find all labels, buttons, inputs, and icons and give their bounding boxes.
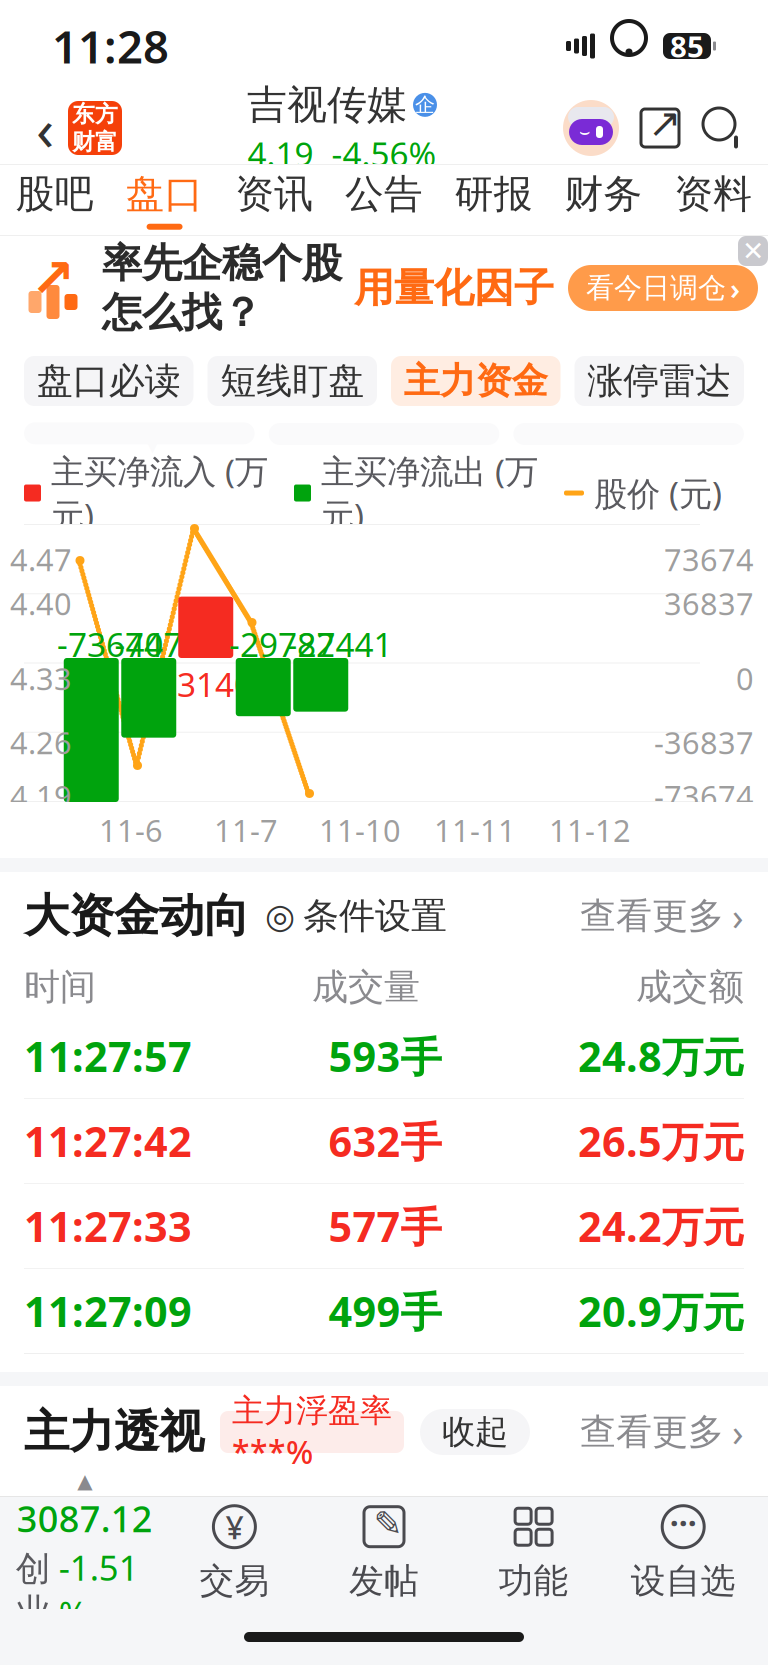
staticText: 资讯 [235,170,313,218]
button[interactable]: 11:27:33 [0,1184,768,1269]
staticText: ▲ [77,1470,92,1492]
staticText: 主买净流出 (万元) [321,449,538,537]
button[interactable]: 盘口必读 [24,356,193,406]
button[interactable]: 财务 [549,165,658,235]
staticText: 创业 [16,1548,51,1633]
staticText: › [732,891,744,941]
staticText: 发帖 [349,1560,419,1602]
button[interactable]: ◎ [249,894,447,938]
staticText: 交易 [199,1560,269,1602]
button[interactable]: 主力资金 [391,356,560,406]
staticText: 看今日调仓 [586,271,726,305]
staticText: ↗ [30,248,75,308]
staticText: 632手 [328,1114,441,1168]
staticText: -1.51% [59,1544,139,1636]
staticText: ··· [670,1501,697,1544]
staticText: 盘口 [126,170,204,218]
staticText: 24.2万元 [578,1199,744,1253]
staticText: -36837 [654,722,754,763]
staticText: 73674 [664,539,754,580]
staticText: › [730,268,740,307]
button[interactable]: 查看更多 [580,891,744,941]
staticText: 收起 [442,1411,508,1452]
staticText: 11-10 [319,810,401,850]
staticText: 主买净流入 (万元) [51,449,268,537]
staticText: 查看更多 [580,1410,724,1454]
staticText: 11-7 [214,810,278,850]
staticText: 20.9万元 [578,1284,744,1338]
staticText: 涨停雷达 [587,359,731,403]
button[interactable]: 功能 [459,1498,608,1608]
button[interactable]: 11:27:09 [0,1269,768,1353]
staticText: 4.19 [10,776,72,816]
staticText: -40762 [114,622,220,666]
button[interactable]: 智能助手 [562,99,620,157]
button[interactable]: 关闭广告 [738,236,768,266]
staticText: 11:28 [52,16,169,76]
staticText: 0 [736,658,754,699]
button[interactable]: 11:27:57 [0,1014,768,1099]
button[interactable]: 搜索 [700,105,746,151]
staticText: 东方 [72,100,118,128]
button[interactable]: 东方财富首页 [68,101,122,155]
staticText: -29782 [229,622,335,666]
button[interactable]: 收起 [420,1409,530,1455]
staticText: 股吧 [16,170,94,218]
staticText: 11:27:57 [24,1029,192,1083]
staticText: 时间 [24,965,96,1009]
staticText: 11:27:33 [24,1199,192,1253]
staticText: 短线盯盘 [220,359,364,403]
button[interactable]: 返回 [22,98,68,158]
staticText: ¥ [225,1505,243,1548]
button[interactable]: ✎ [309,1498,459,1608]
button[interactable]: 盘口 [110,165,219,235]
staticText: 11-12 [549,810,631,850]
staticText: 率先企稳个股怎么找？ [102,239,342,337]
button[interactable]: ▲ [10,1498,160,1608]
staticText: 成交额 [636,965,744,1009]
button[interactable]: 分享 [638,106,682,150]
staticText: 3087.12 [17,1494,153,1542]
staticText: › [732,1407,744,1457]
staticText: 4.33 [10,658,72,699]
staticText: 577手 [328,1199,441,1253]
staticText: 查看更多 [580,894,724,938]
staticText: 财务 [564,170,642,218]
staticText: 499手 [328,1284,441,1338]
staticText: 资料 [674,170,752,218]
staticText: 4.40 [10,583,72,624]
button[interactable]: 涨停雷达 [574,356,744,406]
staticText: ⌣ [579,123,590,140]
staticText: -27441 [286,622,392,666]
button[interactable]: 查看更多 [580,1407,744,1457]
button[interactable]: ¥ [160,1498,309,1608]
staticText: 11-11 [434,810,516,850]
staticText: 股价 (元) [594,471,722,515]
staticText: ▾ [144,422,161,462]
button[interactable]: ··· [608,1498,758,1608]
staticText: 设自选 [631,1560,736,1602]
button[interactable]: 股吧 [0,165,110,235]
button[interactable]: 资讯 [219,165,329,235]
staticText: 11:27:42 [24,1114,192,1168]
staticText: 4.47 [10,539,72,580]
staticText: 11-6 [99,810,163,850]
staticText: 盘口必读 [37,359,181,403]
staticText: 11:27:09 [24,1284,192,1338]
staticText: 593手 [328,1029,441,1083]
staticText: 企 [415,93,435,117]
button[interactable]: 短线盯盘 [207,356,377,406]
button[interactable]: 资料 [658,165,768,235]
staticText: 吉视传媒 [247,80,407,129]
button[interactable]: 11:27:42 [0,1099,768,1184]
staticText: 31400 [177,662,272,706]
staticText: ↗ [648,100,682,146]
staticText: 功能 [499,1560,569,1602]
staticText: 大资金动向 [24,888,249,944]
button[interactable]: 看今日调仓 [568,265,758,311]
staticText: ✎ [373,1504,402,1543]
button[interactable]: 公告 [329,165,439,235]
button[interactable]: 研报 [439,165,549,235]
staticText: 4.19 -4.56% [247,131,436,176]
staticText: 财富 [72,128,118,156]
